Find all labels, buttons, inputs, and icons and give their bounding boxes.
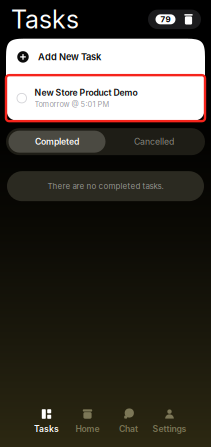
button[interactable]: Settings [149, 408, 190, 434]
staticText: Tasks [34, 423, 59, 434]
staticText: Add New Task [38, 51, 101, 63]
button[interactable]: New Store Product Demo [6, 75, 205, 121]
staticText: New Store Product Demo [34, 87, 137, 98]
staticText: Tasks [11, 4, 79, 35]
staticText: Completed [35, 136, 79, 147]
button[interactable]: Cancelled [105, 131, 202, 153]
button[interactable]: Add New Task [6, 39, 205, 75]
staticText: Cancelled [134, 136, 174, 147]
staticText: 79 [160, 14, 170, 24]
button[interactable]: Chat [108, 408, 149, 434]
staticText: Settings [152, 423, 186, 434]
button[interactable]: Tasks [26, 408, 67, 434]
staticText: Home [75, 423, 99, 434]
staticText: Tomorrow @ 5:01 PM [34, 100, 109, 109]
button[interactable]: Home [67, 408, 108, 434]
button[interactable]: Completed [8, 131, 105, 153]
button[interactable]: Delete all tasks [183, 14, 194, 25]
staticText: Chat [119, 423, 138, 434]
staticText: There are no completed tasks. [47, 181, 163, 191]
